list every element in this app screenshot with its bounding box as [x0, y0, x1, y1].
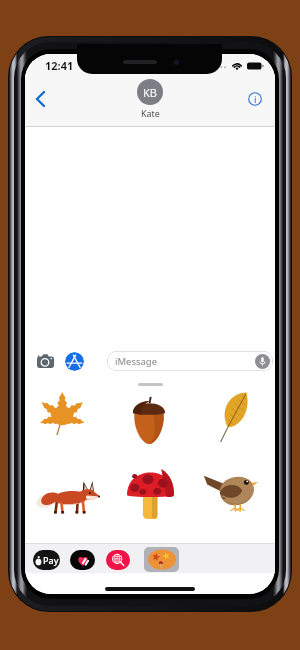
button[interactable]	[109, 379, 192, 447]
button[interactable]	[192, 452, 275, 530]
button[interactable]	[109, 452, 192, 530]
button[interactable]: Details	[243, 87, 267, 111]
button[interactable]: Apple Pay	[33, 550, 60, 570]
button[interactable]	[192, 379, 275, 447]
staticText: Pay	[43, 554, 59, 566]
button[interactable]: App Store	[65, 352, 84, 371]
button[interactable]: Music	[70, 550, 95, 570]
button[interactable]: KB	[137, 79, 163, 119]
button[interactable]	[25, 452, 109, 530]
button[interactable]: Autumn stickers	[144, 547, 179, 572]
staticText: i	[254, 93, 257, 105]
staticText: 12:41	[45, 58, 74, 73]
staticText: KB	[143, 85, 157, 100]
button[interactable]	[25, 379, 109, 447]
staticText: iMessage	[115, 355, 158, 368]
staticText: Kate	[141, 107, 160, 119]
button[interactable]: Camera	[35, 350, 55, 372]
button[interactable]: Image search	[106, 550, 130, 570]
button[interactable]: iMessage	[107, 351, 273, 371]
button[interactable]: Back	[26, 85, 54, 113]
